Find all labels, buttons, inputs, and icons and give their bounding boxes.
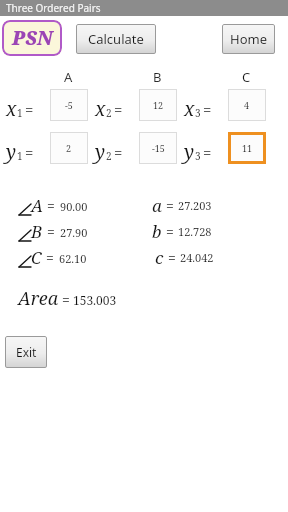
staticText: =	[62, 290, 70, 309]
staticText: -15	[152, 142, 165, 154]
staticText: =	[114, 99, 123, 119]
button[interactable]: 12	[139, 89, 177, 121]
staticText: x	[95, 96, 106, 122]
staticText: x	[6, 96, 17, 122]
staticText: Calculate	[88, 30, 144, 48]
staticText: 62.10	[59, 251, 87, 266]
staticText: =	[47, 196, 55, 215]
staticText: 12	[153, 99, 164, 111]
staticText: =	[166, 222, 174, 241]
staticText: 12.728	[178, 224, 212, 239]
staticText: 27.203	[178, 198, 212, 213]
staticText: 2	[66, 142, 72, 154]
staticText: 27.90	[60, 225, 88, 240]
staticText: =	[203, 99, 212, 119]
button[interactable]: 4	[228, 89, 266, 121]
staticText: 4	[244, 99, 250, 111]
staticText: 90.00	[60, 199, 88, 214]
staticText: Area	[18, 286, 59, 311]
button[interactable]: -5	[50, 89, 88, 121]
staticText: C	[242, 68, 251, 86]
staticText: 153.003	[73, 292, 117, 308]
button[interactable]: Calculate	[76, 24, 156, 54]
staticText: y	[6, 139, 17, 165]
staticText: 1	[17, 149, 23, 163]
staticText: 2	[106, 106, 112, 120]
button[interactable]: -15	[139, 132, 177, 164]
staticText: =	[25, 99, 34, 119]
staticText: a	[152, 194, 162, 217]
staticText: =	[25, 142, 34, 162]
button[interactable]: Home	[222, 24, 275, 54]
staticText: =	[203, 142, 212, 162]
staticText: =	[166, 196, 174, 215]
staticText: 24.042	[180, 250, 214, 265]
staticText: A	[64, 68, 73, 86]
button[interactable]: 2	[50, 132, 88, 164]
staticText: y	[95, 139, 106, 165]
staticText: C	[31, 246, 42, 269]
staticText: x	[184, 96, 195, 122]
staticText: 3	[195, 149, 201, 163]
staticText: B	[31, 220, 43, 243]
staticText: b	[152, 220, 162, 243]
staticText: B	[153, 68, 162, 86]
staticText: 11	[242, 142, 253, 154]
button[interactable]: PSN logo	[2, 20, 62, 56]
staticText: Exit	[16, 344, 37, 360]
staticText: c	[155, 246, 164, 269]
staticText: =	[114, 142, 123, 162]
staticText: Home	[230, 30, 267, 48]
staticText: 2	[106, 149, 112, 163]
staticText: y	[184, 139, 195, 165]
staticText: Three Ordered Pairs	[6, 1, 101, 15]
staticText: PSN	[12, 25, 53, 51]
button[interactable]: Exit	[5, 336, 47, 368]
staticText: =	[46, 248, 54, 267]
staticText: 1	[17, 106, 23, 120]
staticText: -5	[65, 99, 73, 111]
staticText: 3	[195, 106, 201, 120]
staticText: =	[47, 222, 55, 241]
button[interactable]: 11	[228, 132, 266, 164]
staticText: A	[31, 194, 43, 217]
staticText: =	[168, 248, 176, 267]
